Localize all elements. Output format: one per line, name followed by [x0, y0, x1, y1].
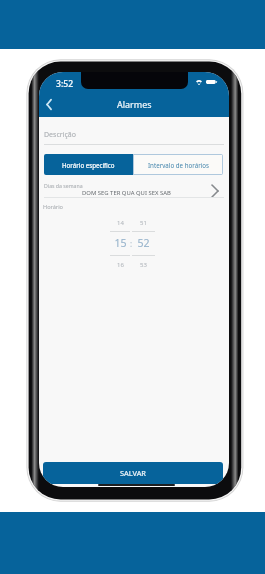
staticText: :	[130, 238, 133, 248]
button[interactable]: Intervalo de horários	[133, 154, 223, 175]
staticText: Dias da semana	[44, 182, 83, 189]
staticText: 15	[114, 236, 127, 250]
button[interactable]: Horário específico	[44, 154, 133, 175]
button[interactable]: Back	[40, 95, 58, 113]
staticText: 14	[117, 219, 124, 227]
button[interactable]: SALVAR	[43, 462, 223, 484]
staticText: SALVAR	[120, 468, 146, 478]
staticText: 51	[140, 219, 147, 227]
staticText: Descrição	[44, 130, 76, 140]
staticText: Intervalo de horários	[148, 161, 209, 169]
button[interactable]: 15	[110, 231, 130, 255]
staticText: 52	[137, 236, 150, 250]
staticText: Horário específico	[62, 161, 115, 169]
staticText: DOM SEG TER QUA QUI SEX SAB	[82, 189, 171, 197]
staticText: 3:52	[56, 78, 74, 90]
staticText: 53	[140, 261, 147, 269]
staticText: Horário	[43, 203, 64, 211]
staticText: Alarmes	[117, 98, 152, 110]
button[interactable]: 52	[132, 231, 155, 255]
staticText: 16	[117, 261, 124, 269]
button[interactable]: Dias da semana	[39, 176, 229, 198]
